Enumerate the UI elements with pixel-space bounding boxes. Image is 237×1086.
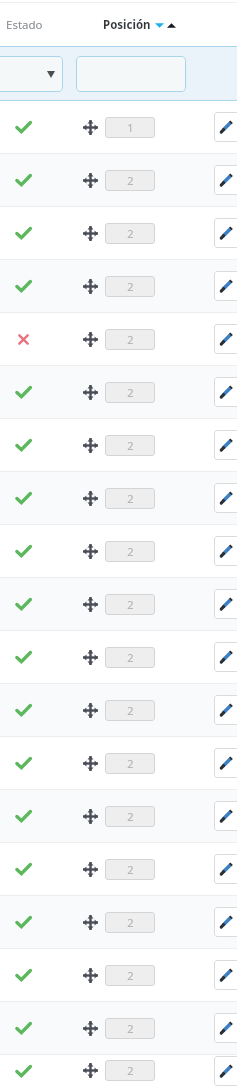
button[interactable]: Activo	[10, 485, 36, 511]
button[interactable]: Activo	[10, 273, 36, 299]
button[interactable]: 2	[105, 541, 155, 562]
button[interactable]: Editar	[214, 695, 237, 725]
button[interactable]: Activo	[10, 220, 36, 246]
button[interactable]: Reordenar	[82, 702, 99, 719]
button[interactable]: Reordenar	[82, 967, 99, 984]
button[interactable]: Activo	[10, 379, 36, 405]
button[interactable]: Reordenar	[82, 596, 99, 613]
button[interactable]: Reordenar	[82, 543, 99, 560]
button[interactable]: Editar	[214, 218, 237, 248]
button[interactable]: Editar	[214, 1056, 237, 1086]
button[interactable]: Activo	[10, 697, 36, 723]
staticText: 2	[127, 279, 134, 294]
button[interactable]: Activo	[10, 1015, 36, 1041]
button[interactable]: Editar	[214, 483, 237, 513]
staticText: 2	[127, 650, 134, 665]
button[interactable]: Editar	[214, 960, 237, 990]
button[interactable]: Activo	[10, 750, 36, 776]
button[interactable]: Editar	[214, 854, 237, 884]
staticText: 2	[127, 809, 134, 824]
button[interactable]: 2	[105, 1060, 155, 1081]
button[interactable]: 2	[105, 700, 155, 721]
button[interactable]: 2	[105, 488, 155, 509]
button[interactable]: Estado	[2, 11, 47, 39]
staticText: 2	[127, 915, 134, 930]
button[interactable]: Reordenar	[82, 437, 99, 454]
staticText: 2	[127, 1063, 134, 1078]
staticText: 2	[127, 226, 134, 241]
button[interactable]: 2	[105, 329, 155, 350]
button[interactable]: 1	[105, 117, 155, 138]
staticText: 2	[127, 862, 134, 877]
button[interactable]: 2	[105, 859, 155, 880]
button[interactable]: Reordenar	[82, 384, 99, 401]
button[interactable]: Editar	[214, 907, 237, 937]
button[interactable]: Activo	[10, 538, 36, 564]
button[interactable]: Editar	[214, 642, 237, 672]
staticText: 2	[127, 385, 134, 400]
button[interactable]: 2	[105, 170, 155, 191]
button[interactable]: Reordenar	[82, 119, 99, 136]
button[interactable]: Activo	[10, 432, 36, 458]
button[interactable]: Reordenar	[82, 1020, 99, 1037]
button[interactable]: 2	[105, 594, 155, 615]
button[interactable]: Editar	[214, 536, 237, 566]
button[interactable]: Reordenar	[82, 649, 99, 666]
button[interactable]: 2	[105, 382, 155, 403]
staticText: 2	[127, 597, 134, 612]
button[interactable]: Editar	[214, 801, 237, 831]
button[interactable]: Reordenar	[82, 808, 99, 825]
button[interactable]: Reordenar	[82, 331, 99, 348]
button[interactable]: 2	[105, 647, 155, 668]
button[interactable]: 2	[105, 435, 155, 456]
button[interactable]: Editar	[214, 271, 237, 301]
staticText: 2	[127, 544, 134, 559]
staticText: 2	[127, 491, 134, 506]
button[interactable]: Posición	[100, 11, 179, 39]
button[interactable]: Editar	[214, 430, 237, 460]
button[interactable]: 2	[105, 806, 155, 827]
button[interactable]: Editar	[214, 324, 237, 354]
button[interactable]: Editar	[214, 1013, 237, 1043]
button[interactable]: Activo	[10, 909, 36, 935]
button[interactable]: 2	[105, 753, 155, 774]
staticText: 2	[127, 703, 134, 718]
button[interactable]: Editar	[214, 589, 237, 619]
button[interactable]: Activo	[10, 167, 36, 193]
button[interactable]: Reordenar	[82, 861, 99, 878]
button[interactable]: Reordenar	[82, 755, 99, 772]
staticText: 2	[127, 438, 134, 453]
button[interactable]: Activo	[10, 803, 36, 829]
button[interactable]: Activo	[10, 856, 36, 882]
button[interactable]: Editar	[214, 377, 237, 407]
staticText: 2	[127, 1021, 134, 1036]
button[interactable]: Reordenar	[82, 172, 99, 189]
staticText: 2	[127, 332, 134, 347]
button[interactable]: Reordenar	[82, 490, 99, 507]
staticText: 1	[127, 120, 134, 135]
button[interactable]: Reordenar	[82, 278, 99, 295]
staticText: 2	[127, 756, 134, 771]
button[interactable]: Activo	[10, 114, 36, 140]
button[interactable]: Editar	[214, 165, 237, 195]
staticText: Estado	[6, 17, 43, 33]
button[interactable]: Activo	[10, 1058, 36, 1084]
button[interactable]: Reordenar	[82, 914, 99, 931]
button[interactable]: Activo	[10, 962, 36, 988]
button[interactable]: 2	[105, 276, 155, 297]
button[interactable]: 2	[105, 912, 155, 933]
button[interactable]: Inactivo	[10, 326, 36, 352]
button[interactable]: Filtrar posición	[76, 56, 186, 92]
staticText: 2	[127, 173, 134, 188]
button[interactable]: 2	[105, 223, 155, 244]
button[interactable]: Filtrar estado	[0, 56, 63, 92]
button[interactable]: Reordenar	[82, 225, 99, 242]
button[interactable]: 2	[105, 1018, 155, 1039]
button[interactable]: Editar	[214, 112, 237, 142]
button[interactable]: 2	[105, 965, 155, 986]
staticText: 2	[127, 968, 134, 983]
button[interactable]: Activo	[10, 644, 36, 670]
button[interactable]: Activo	[10, 591, 36, 617]
button[interactable]: Reordenar	[82, 1062, 99, 1079]
button[interactable]: Editar	[214, 748, 237, 778]
